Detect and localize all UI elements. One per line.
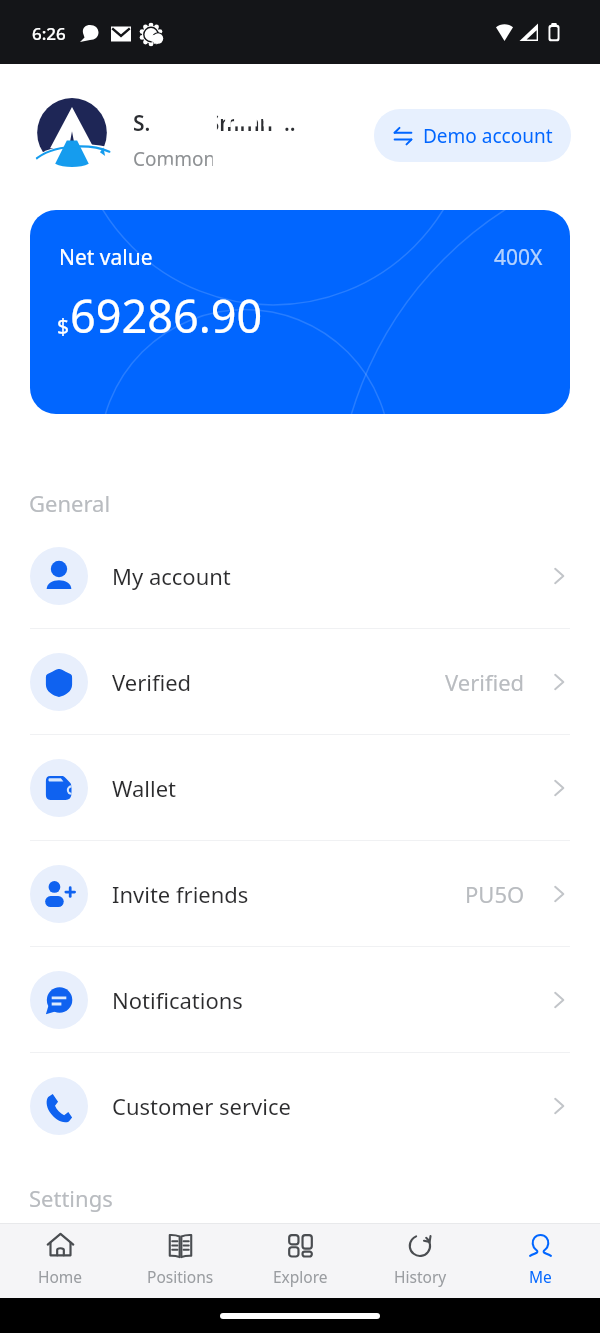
staticText: History xyxy=(394,1266,447,1287)
button[interactable]: My account xyxy=(0,523,600,628)
staticText: Explore xyxy=(273,1266,328,1287)
button[interactable]: Demo account xyxy=(374,109,571,162)
staticText: Verified xyxy=(112,667,192,697)
staticText: 400X xyxy=(494,243,543,272)
button[interactable]: Me xyxy=(480,1224,600,1298)
staticText: Notifications xyxy=(112,985,243,1015)
button[interactable]: Home xyxy=(0,1224,120,1298)
staticText: Customer service xyxy=(112,1091,291,1121)
staticText: Wallet xyxy=(112,773,177,803)
button[interactable]: Positions xyxy=(120,1224,240,1298)
button[interactable]: Wallet xyxy=(0,735,600,840)
button[interactable]: Invite friends xyxy=(0,841,600,946)
staticText: Invite friends xyxy=(112,879,249,909)
button[interactable]: Net value xyxy=(30,210,570,414)
button[interactable]: Customer service xyxy=(0,1053,600,1158)
staticText: Positions xyxy=(147,1266,214,1287)
staticText: 69286.90 xyxy=(70,285,263,346)
staticText: General xyxy=(29,488,111,518)
staticText: Settings xyxy=(29,1183,113,1213)
button[interactable]: Explore xyxy=(240,1224,360,1298)
button[interactable]: History xyxy=(360,1224,480,1298)
staticText: PU5O xyxy=(465,879,525,909)
staticText: Net value xyxy=(59,243,153,272)
staticText: Home xyxy=(38,1266,83,1287)
button[interactable]: Verified xyxy=(0,629,600,734)
staticText: Common ac xyxy=(133,146,240,172)
staticText: Demo account xyxy=(423,123,553,149)
staticText: $ xyxy=(57,312,70,341)
staticText: S. ka Smmn .. xyxy=(133,109,296,138)
staticText: My account xyxy=(112,561,231,591)
staticText: Verified xyxy=(445,667,525,697)
staticText: 6:26 xyxy=(32,22,66,45)
staticText: Me xyxy=(529,1266,552,1287)
button[interactable]: Notifications xyxy=(0,947,600,1052)
